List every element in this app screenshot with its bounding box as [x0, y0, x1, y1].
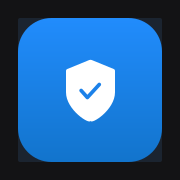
button[interactable]: Security — [18, 18, 162, 162]
